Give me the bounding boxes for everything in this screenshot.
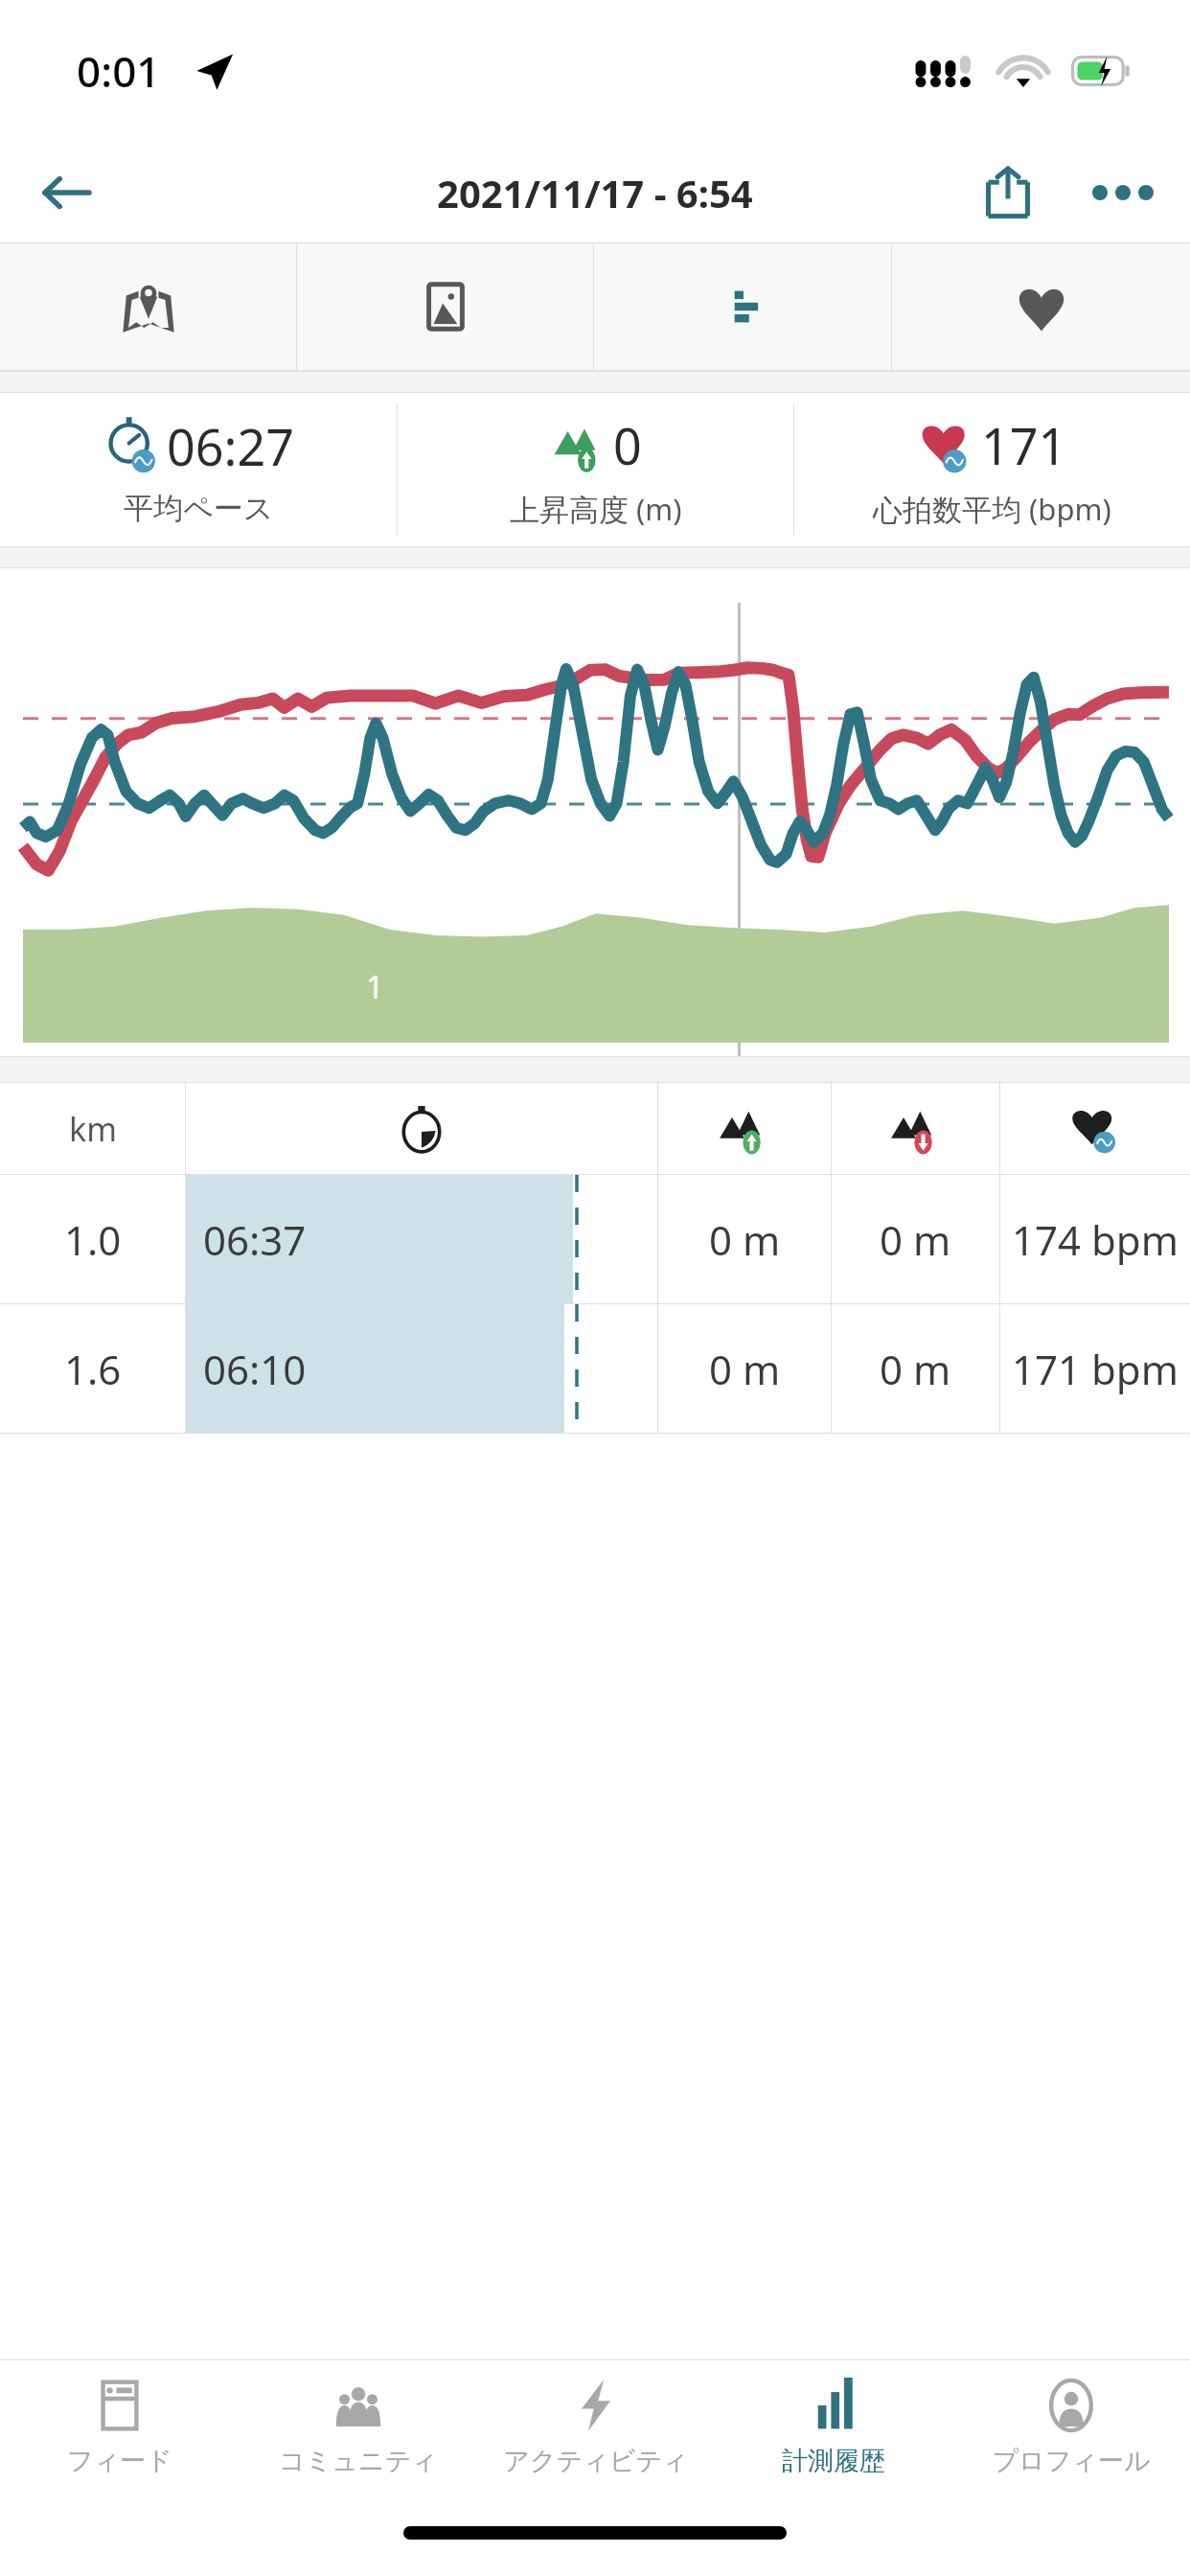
button[interactable]: More options — [1077, 147, 1169, 239]
staticText: 0 — [613, 411, 642, 479]
button[interactable]: Share — [962, 147, 1054, 239]
button[interactable]: Photos — [297, 243, 594, 370]
staticText: 0 m — [709, 1212, 781, 1267]
staticText: 計測履歴 — [782, 2445, 885, 2477]
staticText: 1 — [366, 966, 384, 1008]
staticText: 0 m — [709, 1342, 781, 1396]
staticText: 1.0 — [64, 1212, 122, 1267]
staticText: 06:37 — [203, 1212, 307, 1267]
button[interactable]: プロフィール — [952, 2360, 1190, 2509]
staticText: 1.6 — [64, 1342, 122, 1396]
staticText: 0 m — [880, 1212, 951, 1267]
staticText: 171 — [981, 411, 1067, 479]
staticText: 0 m — [880, 1342, 951, 1396]
staticText: 0:01 — [77, 42, 161, 100]
staticText: フィード — [67, 2445, 172, 2477]
staticText: km — [69, 1107, 117, 1151]
button[interactable]: Charts — [594, 243, 892, 370]
button[interactable]: 計測履歴 — [715, 2360, 952, 2509]
button[interactable]: 0 — [398, 393, 793, 546]
button[interactable]: Heart rate — [892, 243, 1190, 370]
button[interactable]: コミュニティ — [239, 2360, 477, 2509]
button[interactable]: 06:27 — [0, 393, 397, 546]
staticText: 06:10 — [203, 1342, 307, 1396]
staticText: コミュニティ — [279, 2445, 438, 2477]
staticText: 平均ペース — [124, 490, 274, 527]
staticText: 06:27 — [167, 412, 294, 480]
button[interactable]: Pace and heart rate chart — [0, 568, 1190, 1056]
button[interactable]: Map — [0, 243, 297, 370]
button[interactable]: Back — [23, 149, 109, 236]
button[interactable]: 1.6 — [0, 1304, 1190, 1434]
staticText: プロフィール — [992, 2445, 1151, 2477]
staticText: アクティビティ — [503, 2445, 689, 2477]
staticText: 心拍数平均 (bpm) — [873, 489, 1111, 529]
button[interactable]: アクティビティ — [477, 2360, 715, 2509]
button[interactable]: フィード — [0, 2360, 239, 2509]
staticText: 上昇高度 (m) — [510, 489, 682, 529]
staticText: 2021/11/17 - 6:54 — [437, 167, 753, 218]
button[interactable]: 171 — [794, 393, 1190, 546]
staticText: 171 bpm — [1012, 1342, 1179, 1396]
button[interactable]: 1.0 — [0, 1175, 1190, 1304]
staticText: 174 bpm — [1012, 1212, 1179, 1267]
